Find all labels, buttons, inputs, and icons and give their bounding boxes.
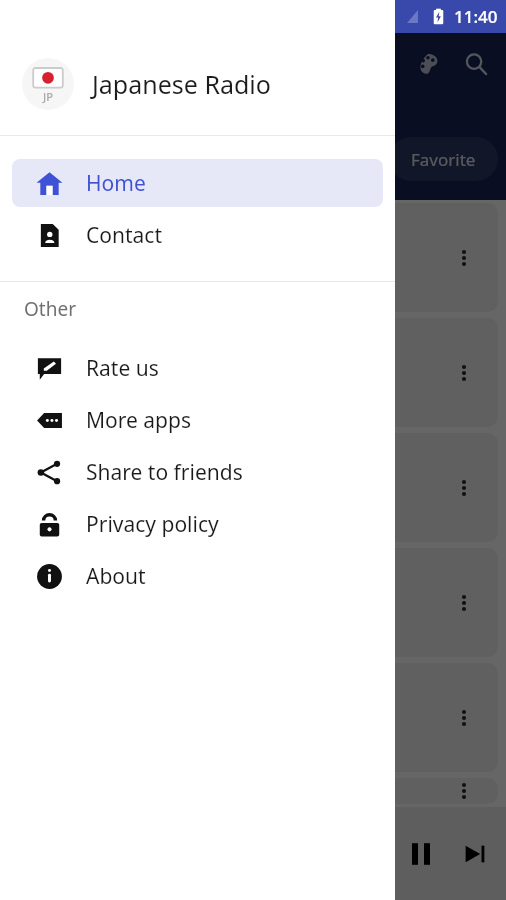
button[interactable]: Rate us <box>12 344 383 392</box>
button[interactable]: Pause <box>394 827 448 881</box>
staticText: Share to friends <box>86 458 243 487</box>
staticText: JP <box>43 89 53 104</box>
button[interactable]: More options <box>444 468 484 508</box>
staticText: Contact <box>86 221 162 250</box>
staticText: Japanese Radio <box>92 67 271 101</box>
staticText: Other <box>24 296 77 322</box>
staticText: Privacy policy <box>86 510 219 539</box>
staticText: More apps <box>86 406 191 435</box>
staticText: About <box>86 562 146 591</box>
button[interactable]: Search <box>452 40 500 88</box>
button[interactable]: Next <box>448 827 502 881</box>
button[interactable]: More options <box>8 433 498 542</box>
button[interactable]: Home <box>12 159 383 207</box>
button[interactable]: More options <box>444 583 484 623</box>
button[interactable]: More options <box>8 203 498 312</box>
button[interactable]: Share to friends <box>12 448 383 496</box>
button[interactable]: Theme <box>404 40 452 88</box>
staticText: Rate us <box>86 354 159 383</box>
button[interactable]: More options <box>8 548 498 657</box>
button[interactable]: Contact <box>12 211 383 259</box>
button[interactable]: More options <box>8 778 498 804</box>
button[interactable]: More options <box>444 353 484 393</box>
staticText: Home <box>86 169 146 198</box>
button[interactable]: More options <box>444 238 484 278</box>
staticText: 11:40 <box>454 5 498 28</box>
button[interactable]: About <box>12 552 383 600</box>
button[interactable]: More options <box>444 698 484 738</box>
button[interactable]: More options <box>8 318 498 427</box>
staticText: Favorite <box>411 148 476 171</box>
button[interactable]: More options <box>8 663 498 772</box>
button[interactable]: More options <box>444 778 484 804</box>
button[interactable]: Favorite <box>389 137 498 181</box>
button[interactable]: More apps <box>12 396 383 444</box>
button[interactable]: Privacy policy <box>12 500 383 548</box>
